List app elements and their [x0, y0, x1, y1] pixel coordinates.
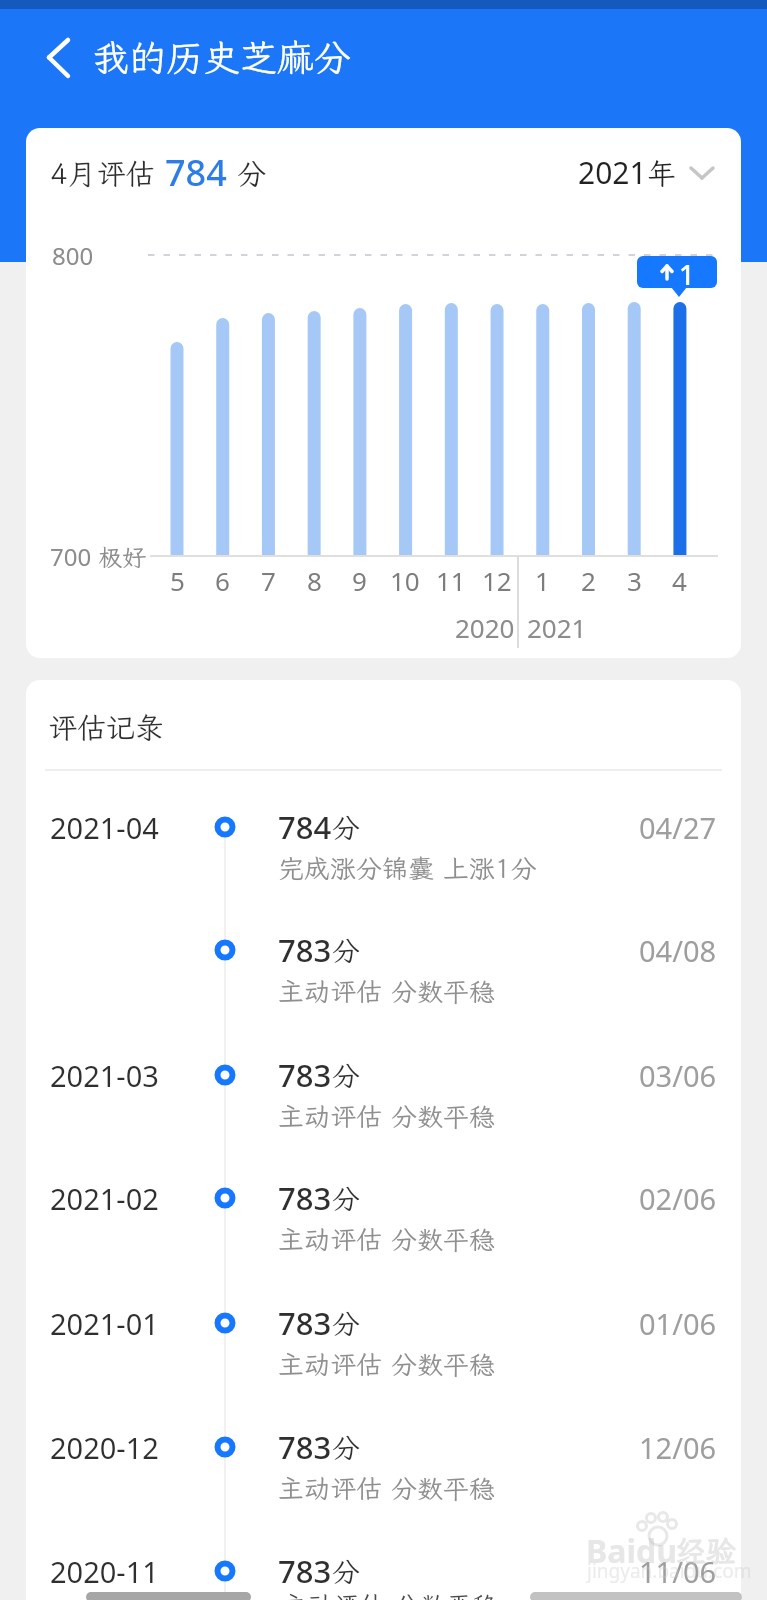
button[interactable]: 1: [637, 256, 717, 288]
button[interactable]: [26, 890, 741, 1010]
staticText: 主动评估 分数平稳: [278, 1347, 496, 1381]
staticText: 4: [672, 563, 687, 598]
staticText: 784: [278, 806, 332, 848]
button[interactable]: 2021: [578, 152, 715, 193]
staticText: 分: [332, 1180, 361, 1217]
staticText: 01/06: [639, 1304, 717, 1343]
staticText: 9: [352, 563, 367, 598]
staticText: 2020: [455, 610, 515, 645]
button[interactable]: [26, 1138, 741, 1258]
staticText: 分: [332, 809, 361, 846]
staticText: 2021-02: [50, 1179, 159, 1218]
staticText: 4月评估: [50, 154, 165, 192]
staticText: 评估记录: [48, 708, 165, 746]
button[interactable]: [26, 1263, 741, 1383]
staticText: 2021-01: [50, 1304, 159, 1343]
staticText: 分: [332, 932, 361, 969]
staticText: 主动评估 分数平稳: [278, 1471, 496, 1505]
button[interactable]: [32, 28, 84, 88]
staticText: 经验: [676, 1531, 736, 1571]
staticText: 10: [390, 563, 420, 598]
staticText: 12: [482, 563, 512, 598]
staticText: 2021: [527, 610, 587, 645]
staticText: 主动评估 分数平稳: [278, 1222, 496, 1256]
staticText: jingyan.baidu.com: [587, 1558, 752, 1584]
staticText: 02/06: [639, 1179, 717, 1218]
staticText: 3: [627, 563, 642, 598]
staticText: 分: [227, 154, 267, 192]
staticText: 800: [52, 239, 94, 272]
staticText: 8: [307, 563, 322, 598]
staticText: 2021-04: [50, 808, 159, 847]
staticText: 783: [278, 1177, 332, 1219]
staticText: 分: [332, 1429, 361, 1466]
staticText: 700: [50, 540, 98, 573]
staticText: 04/08: [639, 931, 717, 970]
staticText: 分: [332, 1057, 361, 1094]
staticText: 6: [215, 563, 230, 598]
staticText: 783: [278, 1054, 332, 1096]
staticText: 2021-03: [50, 1056, 159, 1095]
staticText: 主动评估 分数平稳: [278, 974, 496, 1008]
staticText: 783: [278, 1550, 332, 1592]
staticText: 主动评估 分数平稳: [281, 1588, 499, 1600]
staticText: 783: [278, 1302, 332, 1344]
staticText: 784: [165, 148, 227, 197]
staticText: 11: [436, 563, 466, 598]
staticText: 分: [332, 1553, 361, 1590]
staticText: 我的历史芝麻分: [92, 33, 351, 82]
staticText: 主动评估 分数平稳: [278, 1099, 496, 1133]
staticText: 完成涨分锦囊 上涨1分: [278, 851, 537, 885]
staticText: 7: [261, 563, 276, 598]
staticText: 11/06: [639, 1552, 717, 1591]
staticText: 783: [278, 1426, 332, 1468]
staticText: 2020-12: [50, 1428, 159, 1467]
staticText: 2: [581, 563, 596, 598]
staticText: 12/06: [639, 1428, 717, 1467]
button[interactable]: [26, 1387, 741, 1507]
button[interactable]: [26, 1511, 741, 1600]
staticText: 5: [170, 563, 185, 598]
staticText: 2020-11: [50, 1552, 159, 1591]
staticText: 1: [679, 256, 695, 288]
staticText: Baidu: [586, 1529, 678, 1573]
staticText: 03/06: [639, 1056, 717, 1095]
staticText: 分: [332, 1305, 361, 1342]
staticText: 1: [535, 563, 550, 598]
button[interactable]: [26, 1015, 741, 1135]
staticText: 年: [647, 154, 677, 192]
staticText: 2021: [578, 152, 647, 193]
button[interactable]: [26, 767, 741, 887]
staticText: 04/27: [639, 808, 717, 847]
staticText: 783: [278, 929, 332, 971]
staticText: 极好: [98, 541, 146, 573]
